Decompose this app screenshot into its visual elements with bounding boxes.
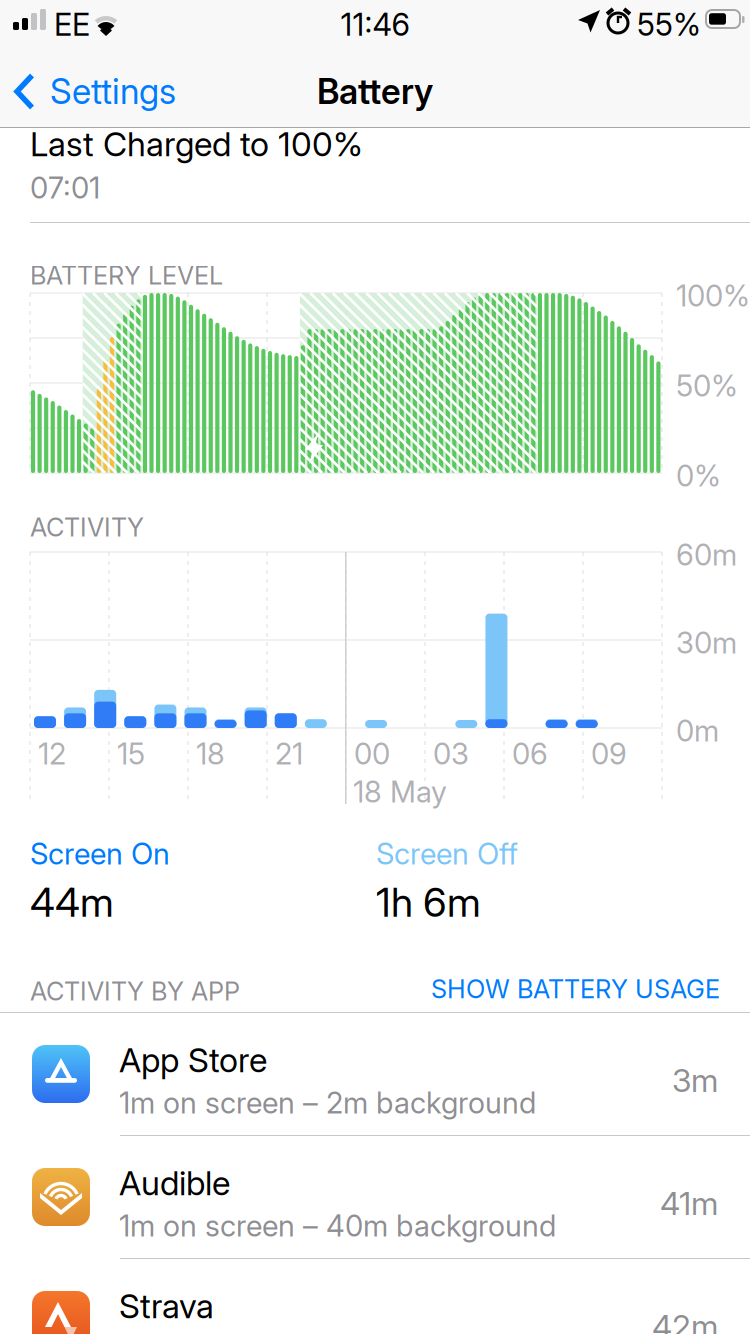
staticText: 0% [676, 458, 721, 493]
staticText: BATTERY LEVEL [30, 260, 223, 291]
staticText: Screen Off [376, 836, 518, 871]
staticText: 44m [30, 878, 114, 926]
staticText: 12 [38, 736, 66, 771]
staticText: 18 [196, 736, 225, 771]
staticText: 00 [354, 736, 390, 771]
staticText: 06 [512, 736, 548, 771]
button[interactable]: Audible [0, 1136, 750, 1258]
staticText: 09 [591, 736, 627, 771]
button[interactable]: Settings [0, 55, 260, 128]
staticText: 55% [637, 6, 701, 43]
staticText: 50% [676, 368, 738, 403]
staticText: 1m on screen – 40m background [119, 1208, 556, 1243]
staticText: 1m on screen – 2m background [119, 1085, 536, 1120]
staticText: ACTIVITY [30, 512, 144, 543]
staticText: App Store [119, 1040, 267, 1080]
staticText: 100% [676, 278, 750, 313]
staticText: 42m [652, 1307, 718, 1334]
staticText: 1h 6m [376, 878, 481, 926]
staticText: 03 [433, 736, 469, 771]
staticText: Battery [317, 70, 433, 112]
staticText: 30m [676, 625, 737, 660]
staticText: 15 [117, 736, 145, 771]
staticText: Last Charged to 100% [30, 124, 363, 164]
staticText: 21 [275, 736, 303, 771]
staticText: Audible [119, 1163, 230, 1203]
button[interactable]: SHOW BATTERY USAGE [410, 970, 720, 1008]
button[interactable]: App Store [0, 1013, 750, 1135]
staticText: Settings [50, 70, 176, 112]
staticText: ACTIVITY BY APP [30, 976, 240, 1007]
staticText: 18 May [353, 774, 447, 809]
staticText: 41m [660, 1184, 718, 1223]
staticText: 11:46 [340, 6, 409, 43]
staticText: 0m [676, 713, 719, 748]
staticText: 3m [672, 1061, 718, 1100]
staticText: 07:01 [30, 170, 100, 205]
staticText: Strava [119, 1286, 214, 1326]
staticText: Screen On [30, 836, 170, 871]
staticText: EE [54, 6, 90, 43]
staticText: 60m [676, 537, 737, 572]
staticText: SHOW BATTERY USAGE [431, 974, 720, 1004]
button[interactable]: Strava [0, 1259, 750, 1334]
